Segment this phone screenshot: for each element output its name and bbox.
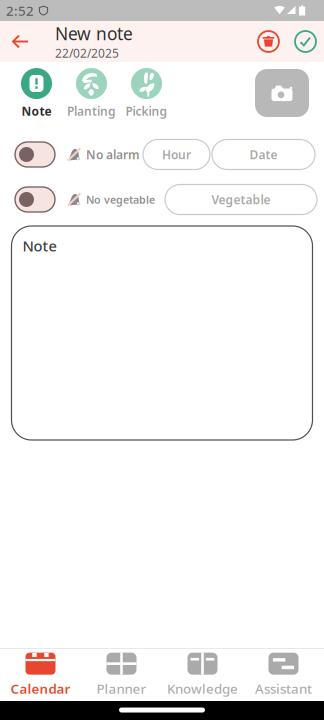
staticText: Knowledge bbox=[167, 680, 238, 697]
staticText: New note bbox=[55, 22, 133, 45]
button[interactable]: Vegetable toggle bbox=[15, 187, 55, 212]
staticText: 2:52 bbox=[6, 2, 34, 19]
button[interactable]: Picking bbox=[119, 62, 174, 128]
button[interactable]: Vegetable bbox=[165, 184, 317, 214]
button[interactable]: Date bbox=[212, 139, 315, 169]
button[interactable]: Knowledge bbox=[162, 652, 243, 698]
button[interactable]: Back bbox=[0, 21, 41, 62]
staticText: Assistant bbox=[255, 680, 312, 697]
button[interactable]: Alarm toggle bbox=[15, 142, 55, 167]
staticText: Picking bbox=[125, 103, 167, 119]
staticText: No alarm bbox=[86, 146, 140, 162]
button[interactable]: Delete note bbox=[253, 26, 284, 57]
button[interactable]: Save note bbox=[290, 26, 321, 57]
button[interactable]: Take photo bbox=[255, 69, 309, 117]
staticText: Planting bbox=[67, 103, 116, 119]
staticText: Hour bbox=[162, 146, 191, 162]
button[interactable]: Assistant bbox=[243, 652, 324, 698]
staticText: Note bbox=[22, 236, 56, 255]
button[interactable]: Note bbox=[11, 226, 312, 440]
button[interactable]: Note bbox=[9, 62, 64, 128]
staticText: No vegetable bbox=[86, 192, 155, 207]
button[interactable]: Calendar bbox=[0, 652, 81, 698]
staticText: Note bbox=[21, 103, 51, 119]
staticText: Planner bbox=[96, 680, 146, 697]
button[interactable]: Hour bbox=[143, 139, 210, 169]
button[interactable]: Planting bbox=[64, 62, 119, 128]
staticText: 22/02/2025 bbox=[55, 45, 119, 61]
staticText: Date bbox=[249, 146, 277, 162]
button[interactable]: Planner bbox=[81, 652, 162, 698]
staticText: Vegetable bbox=[211, 191, 270, 207]
staticText: Calendar bbox=[10, 680, 70, 697]
